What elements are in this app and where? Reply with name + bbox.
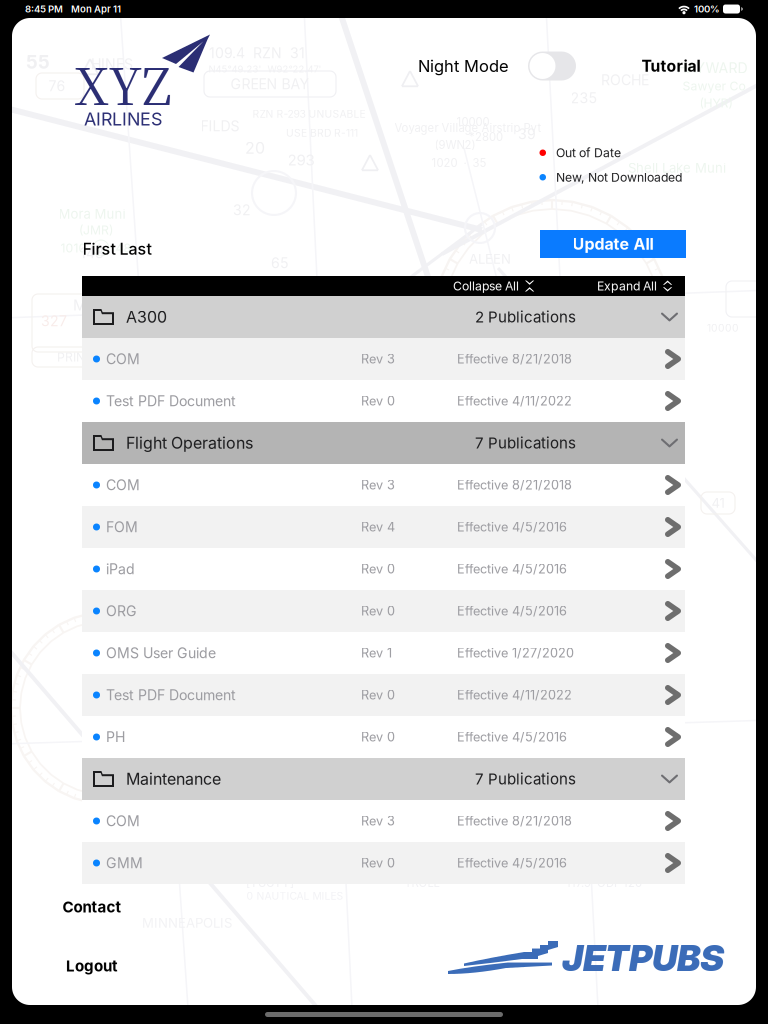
staticText: FOM	[106, 519, 138, 535]
staticText: COM	[106, 813, 140, 829]
staticText: Rev 1	[361, 645, 392, 661]
staticText: AIRLINES	[84, 108, 162, 130]
staticText: 0 NAUTICAL MILES	[246, 890, 343, 902]
staticText: 327	[41, 313, 67, 329]
staticText: 39	[518, 126, 536, 142]
staticText: 55	[26, 51, 50, 73]
staticText: 143	[80, 245, 104, 261]
button[interactable]: Contact	[62, 898, 121, 916]
staticText: COM	[106, 351, 140, 367]
button[interactable]: FOM	[82, 506, 685, 548]
button[interactable]: Update All	[540, 230, 686, 258]
staticText: Rev 0	[361, 687, 395, 703]
staticText: HAYWARD	[676, 60, 747, 76]
staticText: 282	[188, 417, 215, 433]
staticText: FILDS	[200, 118, 239, 134]
staticText: SIREN	[630, 290, 668, 306]
staticText: Rev 0	[361, 729, 395, 745]
staticText: Effective 4/5/2016	[457, 561, 567, 577]
button[interactable]: GMM	[82, 842, 685, 884]
staticText: Mora Muni	[58, 206, 125, 222]
button[interactable]: ORG	[82, 590, 685, 632]
button[interactable]: Tutorial	[641, 57, 700, 75]
staticText: (RZN)	[635, 325, 668, 339]
staticText: 32	[233, 202, 251, 218]
staticText: 100%	[694, 3, 720, 15]
staticText: USE BRD R-111	[286, 127, 358, 139]
staticText: GMM	[106, 855, 143, 871]
staticText: 10000	[707, 322, 739, 334]
staticText: JMR	[88, 313, 116, 329]
staticText: MINNEAPOLIS	[142, 915, 232, 931]
staticText: 65	[271, 255, 289, 271]
staticText: Effective 8/21/2018	[457, 351, 572, 367]
staticText: Rev 0	[361, 561, 395, 577]
staticText: 293	[287, 151, 314, 169]
staticText: ORG	[106, 603, 137, 619]
button[interactable]: COM	[82, 338, 685, 380]
button[interactable]: iPad	[82, 548, 685, 590]
button[interactable]: A300	[82, 296, 685, 338]
staticText: First Last	[82, 239, 151, 258]
staticText: 117.9 ODI 126	[566, 876, 642, 890]
staticText: OMS User Guide	[106, 645, 216, 661]
staticText: Effective 8/21/2018	[457, 477, 572, 493]
staticText: Grantsburg Muni	[374, 285, 479, 301]
staticText: 41	[711, 495, 724, 511]
staticText: 109.4 RZN 31	[209, 45, 305, 61]
button[interactable]: Flight Operations	[82, 422, 685, 464]
staticText: Rev 3	[361, 813, 395, 829]
button[interactable]: Maintenance	[82, 758, 685, 800]
staticText: TROLL	[404, 876, 439, 890]
staticText: Test PDF Document	[106, 687, 236, 703]
button[interactable]: COM	[82, 800, 685, 842]
button[interactable]: Test PDF Document	[82, 380, 685, 422]
staticText: Effective 4/5/2016	[457, 603, 567, 619]
staticText: HINES	[91, 56, 133, 72]
staticText: 7 Publications	[475, 770, 576, 788]
staticText: 235	[570, 90, 597, 106]
staticText: 926 Ⓛ 44	[114, 463, 182, 477]
staticText: 1020 · 35	[431, 156, 486, 170]
button[interactable]: Test PDF Document	[82, 674, 685, 716]
staticText: 2 Publications	[475, 308, 576, 326]
button[interactable]: COM	[82, 464, 685, 506]
button[interactable]: Collapse All	[453, 279, 535, 293]
staticText: A300	[126, 307, 167, 326]
staticText: Logout	[66, 957, 118, 975]
staticText: Shell Lake Muni	[628, 160, 726, 176]
staticText: Rev 4	[361, 519, 395, 535]
staticText: Effective 4/5/2016	[457, 729, 567, 745]
staticText: Collapse All	[453, 279, 519, 293]
button[interactable]: Expand All	[597, 279, 673, 293]
staticText: ROS	[235, 417, 261, 433]
staticText: New, Not Downloaded	[556, 170, 682, 184]
staticText: (9WN2)	[434, 138, 475, 152]
staticText: Out of Date	[556, 145, 621, 160]
staticText: COM	[106, 477, 140, 493]
staticText: 7 Publications	[475, 434, 576, 452]
staticText: Effective 1/27/2020	[457, 645, 574, 661]
staticText: 122.4	[117, 274, 151, 290]
staticText: Maintenance	[126, 769, 221, 788]
staticText: Sawyer Co	[682, 79, 745, 93]
staticText: iPad	[106, 561, 135, 577]
staticText: 76	[48, 78, 65, 94]
staticText: 1010 Ⓛ 48	[60, 241, 131, 255]
staticText: Effective 8/21/2018	[457, 813, 572, 829]
staticText: Rev 0	[361, 603, 395, 619]
button[interactable]: PH	[82, 716, 685, 758]
staticText: Flight Operations	[126, 433, 253, 452]
staticText: Update All	[572, 234, 653, 253]
button[interactable]: Logout	[66, 957, 118, 975]
staticText: MORA	[73, 296, 119, 314]
staticText: Effective 4/5/2016	[457, 519, 567, 535]
button[interactable]: OMS User Guide	[82, 632, 685, 674]
button[interactable]: Night Mode	[418, 51, 576, 80]
staticText: ALEEN	[469, 251, 511, 267]
